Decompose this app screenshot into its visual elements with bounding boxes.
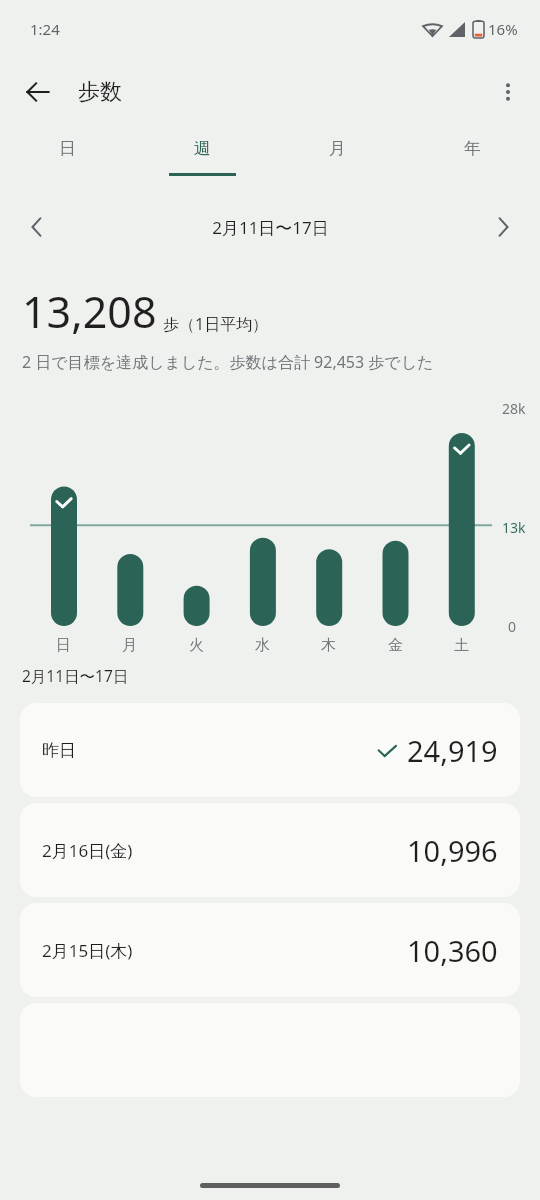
staticText: 2 日で目標を達成しました。歩数は合計 92,453 歩でした [22,351,434,373]
staticText: 日 [56,636,71,655]
staticText: 2月15日(木) [42,939,133,962]
staticText: 昨日 [42,740,76,761]
button[interactable]: 2月16日(金) [20,803,520,897]
staticText: 28k [502,399,526,418]
staticText: 歩数 [78,78,122,106]
staticText: 10,360 [407,931,498,970]
staticText: 月 [329,138,346,159]
button[interactable]: 日 [0,126,135,188]
staticText: 木 [321,636,336,655]
staticText: 月 [122,636,137,655]
button[interactable]: Back [14,68,62,116]
staticText: 16% [488,19,518,39]
staticText: 日 [59,138,76,159]
staticText: 週 [194,138,211,159]
staticText: 0 [508,617,517,636]
staticText: 2月11日〜17日 [22,665,129,686]
button[interactable]: Previous week [14,204,60,250]
staticText: 土 [454,636,469,655]
staticText: 年 [464,138,481,159]
staticText: 24,919 [407,731,498,770]
staticText: 火 [189,636,204,655]
staticText: 1:24 [30,19,60,39]
button[interactable]: 週 [135,126,270,188]
button[interactable]: 年 [405,126,540,188]
staticText: 2月11日〜17日 [212,216,329,239]
button[interactable]: More options [484,68,532,116]
staticText: 10,996 [407,831,498,870]
button[interactable]: 月 [270,126,405,188]
staticText: 金 [388,636,403,655]
button[interactable]: 昨日 [20,703,520,797]
staticText: 歩（1日平均） [163,313,269,335]
button[interactable]: 2月15日(木) [20,903,520,997]
button[interactable]: Next week [480,204,526,250]
staticText: 13k [502,518,526,537]
staticText: 2月16日(金) [42,839,133,862]
staticText: 13,208 [22,282,157,341]
staticText: 水 [255,636,270,655]
